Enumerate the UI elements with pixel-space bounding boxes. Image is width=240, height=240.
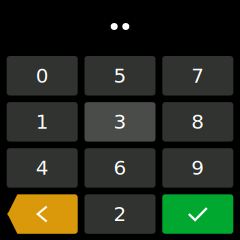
- staticText: 6: [113, 156, 126, 180]
- staticText: 3: [113, 110, 126, 133]
- button[interactable]: 2: [84, 194, 155, 234]
- button[interactable]: 6: [84, 148, 155, 188]
- button[interactable]: 1: [7, 102, 78, 142]
- staticText: 5: [113, 64, 126, 87]
- button[interactable]: 5: [84, 56, 155, 95]
- staticText: 0: [36, 64, 49, 87]
- button[interactable]: 3: [84, 102, 155, 142]
- staticText: 4: [36, 156, 49, 180]
- staticText: 8: [191, 110, 204, 133]
- button[interactable]: 0: [7, 56, 78, 95]
- staticText: 2: [113, 202, 126, 226]
- staticText: 7: [191, 64, 204, 87]
- button[interactable]: 8: [162, 102, 233, 142]
- button[interactable]: 9: [162, 148, 233, 188]
- button[interactable]: 7: [162, 56, 233, 95]
- button[interactable]: Confirm: [162, 194, 233, 234]
- staticText: 1: [36, 110, 49, 133]
- staticText: 9: [191, 156, 204, 180]
- button[interactable]: 4: [7, 148, 78, 188]
- button[interactable]: Delete: [7, 194, 78, 234]
